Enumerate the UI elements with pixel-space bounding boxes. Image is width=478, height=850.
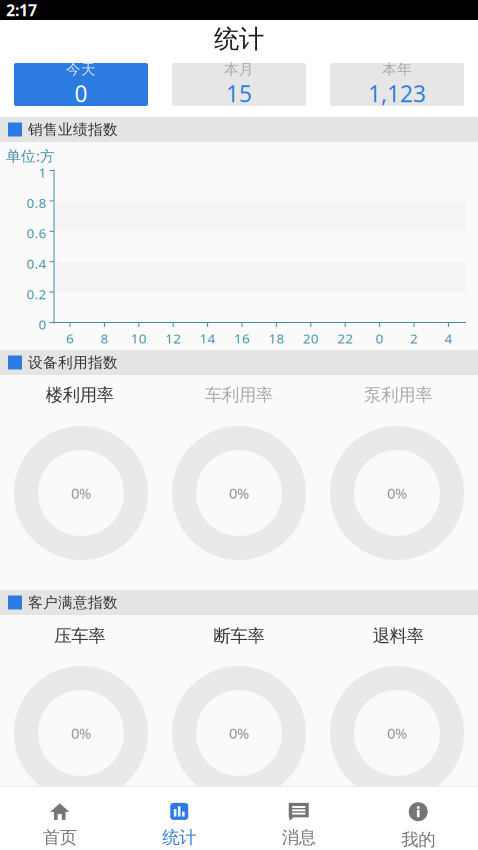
staticText: 1,123: [368, 78, 426, 109]
staticText: 客户满意指数: [28, 593, 118, 611]
staticText: 销售业绩指数: [28, 120, 118, 138]
staticText: 0%: [387, 483, 407, 503]
staticText: 4: [444, 329, 452, 347]
staticText: 统计: [214, 23, 264, 54]
staticText: 消息: [282, 827, 316, 848]
staticText: 1: [38, 163, 46, 181]
staticText: 泵利用率: [364, 384, 432, 406]
staticText: 6: [66, 329, 74, 347]
staticText: 我的: [401, 829, 435, 850]
staticText: 16: [234, 329, 250, 347]
staticText: 0.8: [26, 194, 46, 212]
staticText: 14: [200, 329, 216, 347]
staticText: 0: [38, 315, 46, 333]
staticText: 2: [410, 329, 418, 347]
staticText: 0: [376, 329, 384, 347]
staticText: 车利用率: [205, 384, 273, 406]
staticText: 15: [226, 78, 252, 109]
staticText: 0%: [71, 723, 91, 743]
staticText: 今天: [66, 60, 96, 78]
staticText: 首页: [43, 827, 77, 848]
staticText: 0%: [229, 723, 249, 743]
staticText: 0%: [229, 483, 249, 503]
button[interactable]: 本年: [330, 63, 464, 106]
staticText: 单位:方: [6, 146, 55, 165]
staticText: 0: [74, 78, 87, 109]
staticText: 8: [100, 329, 108, 347]
staticText: 20: [303, 329, 319, 347]
button[interactable]: 今天: [14, 63, 148, 106]
staticText: 退料率: [373, 625, 424, 647]
button[interactable]: 首页: [0, 787, 119, 850]
staticText: 楼利用率: [46, 384, 114, 406]
staticText: 本月: [224, 60, 254, 78]
staticText: 2:17: [6, 0, 37, 21]
button[interactable]: 统计: [119, 787, 239, 850]
button[interactable]: 我的: [358, 787, 478, 850]
staticText: 10: [131, 329, 147, 347]
staticText: 22: [337, 329, 353, 347]
staticText: 0.4: [26, 255, 46, 272]
staticText: 本年: [382, 60, 412, 78]
staticText: 0%: [387, 723, 407, 743]
button[interactable]: 本月: [172, 63, 306, 106]
staticText: 断车率: [213, 625, 264, 647]
staticText: 压车率: [54, 625, 105, 647]
staticText: 12: [165, 329, 181, 347]
staticText: 设备利用指数: [28, 353, 118, 371]
button[interactable]: 消息: [239, 787, 358, 850]
staticText: 18: [268, 329, 284, 347]
staticText: 0%: [71, 483, 91, 503]
staticText: 0.6: [26, 224, 46, 242]
staticText: 0.2: [26, 285, 46, 303]
staticText: 统计: [162, 827, 196, 848]
